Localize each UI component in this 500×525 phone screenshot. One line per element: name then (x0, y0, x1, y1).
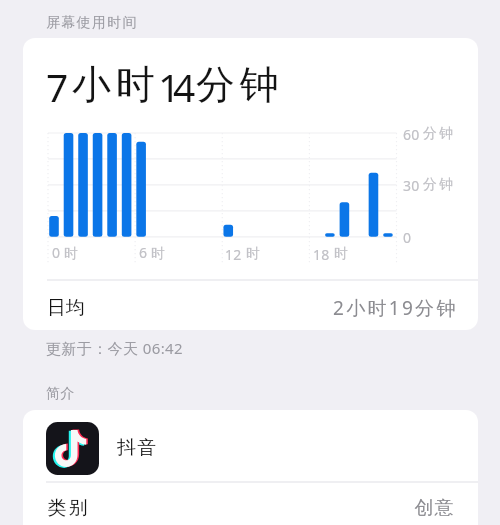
staticText: 12 (225, 245, 242, 264)
staticText: 屏幕使用时间 (46, 14, 138, 32)
staticText: 4 (173, 60, 196, 113)
staticText: 2小时19分钟 (333, 295, 458, 321)
staticText: 更新于：今天 06:42 (46, 338, 184, 358)
staticText: 0时 (52, 243, 83, 262)
staticText: 抖音 (117, 436, 158, 460)
staticText: 0 (403, 228, 412, 247)
button[interactable]: 类别 (23, 482, 478, 525)
staticText: 1 (158, 60, 181, 113)
staticText: 类别 (46, 496, 89, 520)
staticText: 分钟 (196, 60, 284, 109)
staticText: 分钟 (422, 176, 454, 194)
other: 抖音 (46, 422, 99, 475)
staticText: 30 (403, 176, 420, 195)
staticText: 时 (334, 245, 349, 263)
staticText: 创意 (414, 496, 454, 520)
button[interactable]: 抖音 (23, 412, 478, 484)
staticText: 6时 (139, 243, 170, 262)
staticText: 小时 (72, 60, 160, 109)
staticText: 60 (403, 125, 420, 144)
staticText: 简介 (46, 385, 76, 403)
button[interactable]: 日均 (23, 282, 478, 330)
staticText: 18 (313, 245, 330, 264)
staticText: 日均 (47, 296, 85, 320)
staticText: 分钟 (422, 125, 454, 143)
staticText: 时 (246, 245, 261, 263)
staticText: 7 (46, 60, 69, 113)
